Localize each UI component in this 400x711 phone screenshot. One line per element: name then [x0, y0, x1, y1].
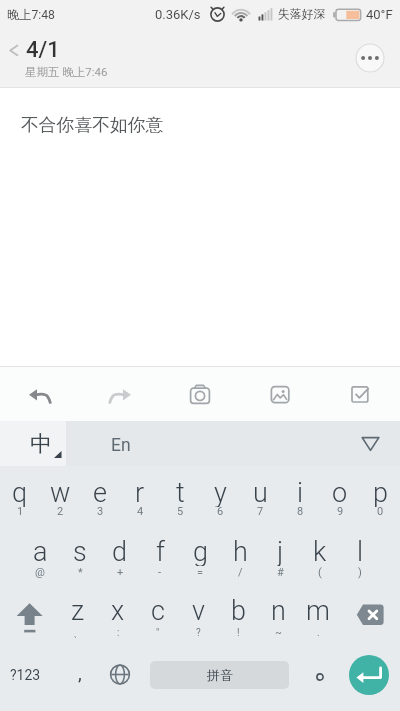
staticText: 失落好深 — [278, 7, 326, 22]
staticText: s — [73, 536, 87, 566]
staticText: y — [214, 477, 227, 507]
button[interactable] — [20, 424, 64, 464]
staticText: h — [233, 536, 248, 566]
staticText: 2 — [57, 505, 64, 518]
button[interactable]: v — [178, 588, 218, 649]
button[interactable]: t — [160, 466, 200, 527]
staticText: " — [156, 627, 160, 639]
button[interactable] — [300, 650, 340, 711]
staticText: ) — [358, 566, 362, 579]
staticText: d — [112, 536, 128, 566]
button[interactable]: a — [20, 527, 60, 588]
staticText: 拼音 — [207, 667, 233, 683]
staticText: p — [373, 477, 388, 507]
staticText: l — [357, 536, 364, 566]
staticText: / — [238, 566, 243, 579]
button[interactable]: s — [60, 527, 100, 588]
staticText: g — [193, 536, 208, 566]
staticText: 4/1 — [26, 37, 60, 63]
staticText: e — [93, 477, 107, 507]
staticText: 3 — [97, 505, 104, 518]
staticText: 星期五 晚上7:46 — [25, 65, 108, 79]
staticText: # — [277, 566, 284, 579]
staticText: w — [50, 477, 71, 507]
button[interactable]: e — [80, 466, 120, 527]
staticText: 7 — [257, 505, 264, 518]
staticText: a — [33, 536, 48, 566]
staticText: 中 — [30, 430, 52, 458]
staticText: c — [151, 595, 165, 625]
button[interactable]: q — [0, 466, 40, 527]
button[interactable]: z — [58, 588, 98, 649]
staticText: 40°F — [366, 7, 393, 22]
button[interactable]: j — [260, 527, 300, 588]
button[interactable]: u — [240, 466, 280, 527]
staticText: 不合你喜不如你意 — [21, 114, 164, 136]
staticText: q — [12, 477, 28, 507]
staticText: ! — [237, 627, 240, 639]
staticText: z — [71, 595, 85, 625]
button[interactable]: p — [360, 466, 400, 527]
staticText: b — [231, 595, 246, 625]
staticText: u — [253, 477, 268, 507]
button[interactable] — [356, 44, 384, 72]
button[interactable]: b — [218, 588, 258, 649]
staticText: : — [117, 627, 120, 639]
staticText: 0.36K/s — [155, 7, 201, 22]
staticText: 5 — [177, 505, 184, 518]
staticText: j — [277, 536, 284, 566]
staticText: ( — [318, 566, 322, 579]
staticText: 0 — [377, 505, 384, 518]
staticText: @ — [35, 566, 45, 579]
button[interactable] — [20, 374, 60, 414]
button[interactable]: l — [340, 527, 380, 588]
button[interactable] — [100, 650, 140, 711]
button[interactable]: k — [300, 527, 340, 588]
staticText: t — [176, 477, 185, 507]
button[interactable]: f — [140, 527, 180, 588]
staticText: ? — [196, 627, 201, 639]
button[interactable]: c — [138, 588, 178, 649]
button[interactable]: x — [98, 588, 138, 649]
button[interactable] — [180, 374, 220, 414]
staticText: * — [78, 566, 83, 579]
staticText: v — [192, 595, 205, 625]
button[interactable]: n — [258, 588, 298, 649]
button[interactable]: d — [100, 527, 140, 588]
button[interactable] — [0, 650, 58, 711]
staticText: . — [317, 627, 320, 639]
button[interactable]: r — [120, 466, 160, 527]
button[interactable]: g — [180, 527, 220, 588]
staticText: 4 — [137, 505, 144, 518]
button[interactable] — [340, 374, 380, 414]
staticText: r — [135, 477, 145, 507]
staticText: - — [158, 566, 162, 579]
staticText: m — [306, 595, 330, 625]
button[interactable]: m — [298, 588, 338, 649]
staticText: i — [297, 477, 304, 507]
button[interactable]: w — [40, 466, 80, 527]
button[interactable]: 拼音 — [150, 661, 289, 689]
button[interactable]: h — [220, 527, 260, 588]
staticText: 1 — [17, 505, 24, 518]
button[interactable] — [0, 588, 58, 649]
button[interactable]: y — [200, 466, 240, 527]
button[interactable] — [349, 655, 389, 695]
staticText: + — [117, 566, 124, 579]
button[interactable] — [60, 650, 100, 711]
staticText: En — [111, 435, 131, 456]
staticText: o — [332, 477, 348, 507]
staticText: = — [197, 566, 204, 579]
staticText: f — [156, 536, 165, 566]
staticText: ?123 — [10, 667, 41, 683]
button[interactable] — [338, 588, 400, 649]
button[interactable] — [100, 374, 140, 414]
staticText: x — [111, 595, 125, 625]
staticText: 9 — [337, 505, 344, 518]
button[interactable]: i — [280, 466, 320, 527]
button[interactable] — [0, 36, 26, 64]
staticText: 、 — [73, 627, 83, 640]
button[interactable] — [352, 426, 389, 462]
button[interactable] — [260, 374, 300, 414]
button[interactable]: o — [320, 466, 360, 527]
